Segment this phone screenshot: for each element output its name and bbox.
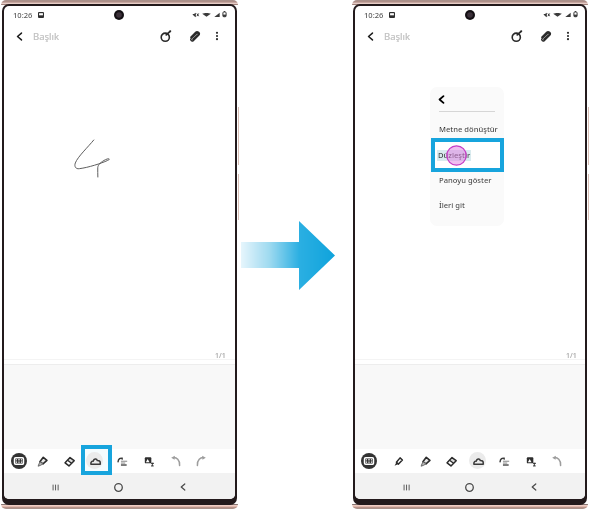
button[interactable]: Eraser (442, 452, 460, 470)
button[interactable]: More options (207, 26, 227, 46)
staticText: Metne dönüştür (439, 124, 498, 134)
button[interactable]: Back (175, 479, 191, 495)
button[interactable]: Insert image (522, 452, 540, 470)
button[interactable]: Select (113, 452, 131, 470)
button[interactable]: Highlighter (33, 452, 51, 470)
staticText: Düzleştir (438, 150, 471, 160)
button[interactable]: Back (9, 26, 29, 46)
button[interactable]: Back (360, 26, 380, 46)
button[interactable]: Recents (398, 479, 414, 495)
button[interactable]: More options (558, 26, 578, 46)
button[interactable]: Back (526, 479, 542, 495)
staticText: Başlık (384, 30, 411, 43)
button[interactable]: Pen (156, 26, 176, 46)
staticText: 1/1 (566, 351, 577, 361)
button[interactable]: Pen (389, 452, 407, 470)
button[interactable]: Pen (507, 26, 527, 46)
button[interactable]: Undo (548, 452, 566, 470)
button[interactable]: Home (110, 479, 126, 495)
button[interactable]: Undo (167, 452, 185, 470)
button[interactable]: Keyboard (360, 452, 378, 470)
button[interactable]: Panoyu göster (430, 171, 504, 189)
button[interactable]: Back (431, 89, 451, 109)
staticText: İleri git (439, 200, 466, 210)
button[interactable]: Attach (185, 26, 205, 46)
button[interactable]: Straighten (86, 452, 104, 470)
button[interactable]: Insert image (140, 452, 158, 470)
button[interactable]: Redo (192, 452, 210, 470)
staticText: Panoyu göster (439, 175, 492, 185)
staticText: 1/1 (215, 351, 226, 361)
staticText: Başlık (33, 30, 60, 43)
button[interactable]: Select (495, 452, 513, 470)
staticText: Düzleştir (439, 150, 472, 160)
button[interactable]: Keyboard (10, 452, 28, 470)
button[interactable]: Highlighter (416, 452, 434, 470)
button[interactable]: Recents (47, 479, 63, 495)
button[interactable]: Metne dönüştür (430, 120, 504, 138)
button[interactable]: Home (461, 479, 477, 495)
staticText: 10:26 (364, 10, 384, 20)
staticText: 10:26 (13, 10, 33, 20)
button[interactable]: Straighten (469, 452, 487, 470)
button[interactable]: İleri git (430, 196, 504, 214)
button[interactable]: Attach (536, 26, 556, 46)
button[interactable]: Eraser (60, 452, 78, 470)
button[interactable]: Düzleştir (430, 146, 504, 164)
